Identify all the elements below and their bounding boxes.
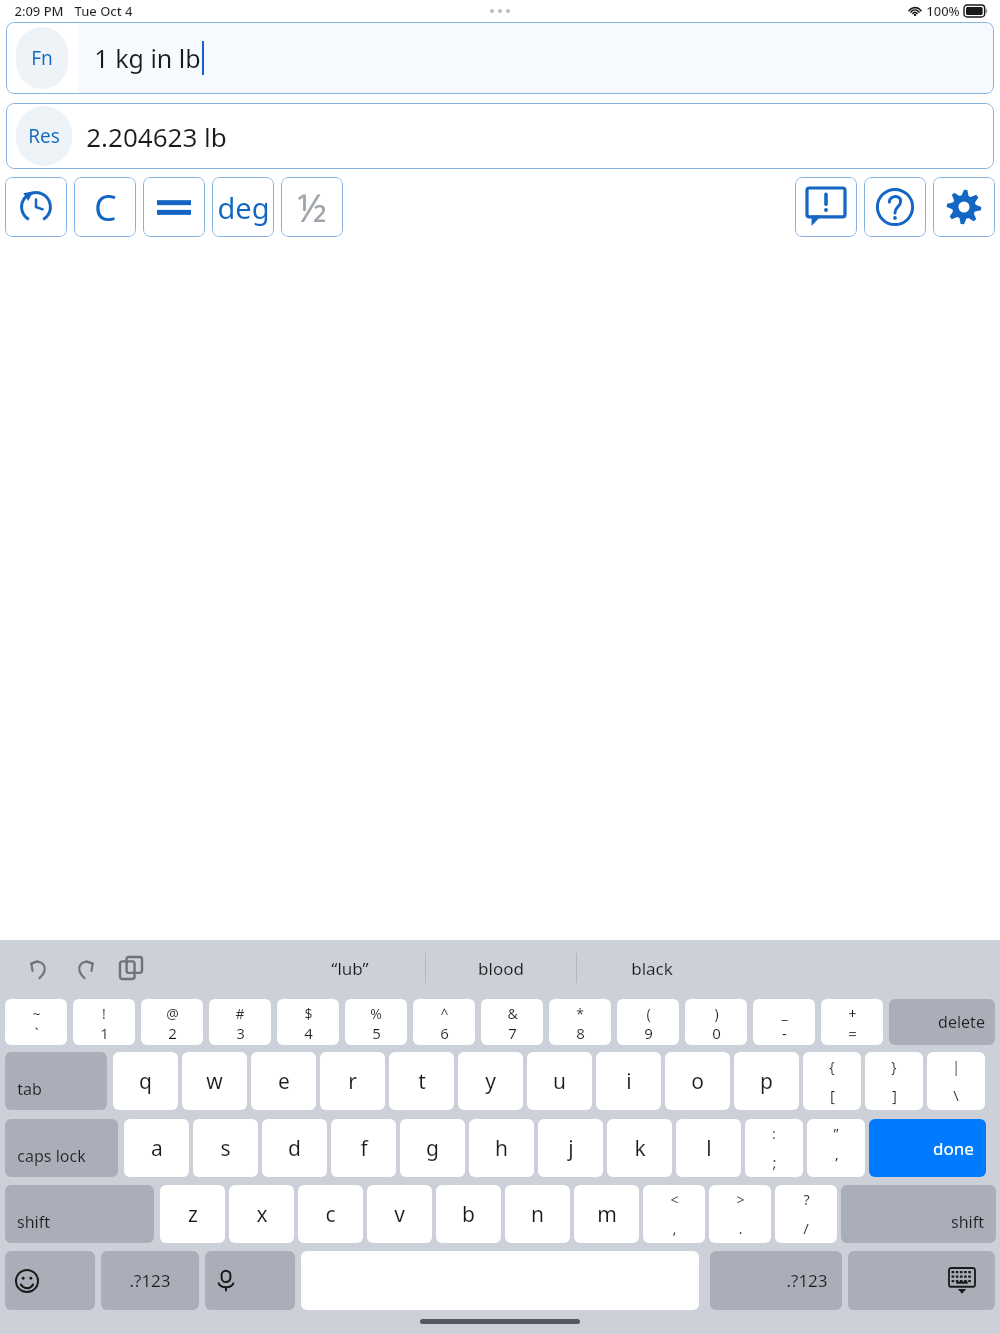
button[interactable]: u: [527, 1052, 592, 1110]
button[interactable]: p: [734, 1052, 799, 1110]
button[interactable]: h: [469, 1119, 534, 1177]
button[interactable]: &: [481, 999, 543, 1045]
button[interactable]: w: [182, 1052, 247, 1110]
button[interactable]: ”: [807, 1119, 865, 1177]
button[interactable]: <: [643, 1185, 705, 1243]
button[interactable]: |: [927, 1052, 985, 1110]
staticText: .: [738, 1218, 743, 1238]
button[interactable]: Undo: [22, 951, 56, 985]
button[interactable]: s: [193, 1119, 258, 1177]
button[interactable]: o: [665, 1052, 730, 1110]
staticText: g: [426, 1134, 439, 1163]
button[interactable]: Res: [6, 103, 994, 169]
button[interactable]: r: [320, 1052, 385, 1110]
button[interactable]: m: [574, 1185, 639, 1243]
button[interactable]: .?123: [101, 1251, 199, 1310]
button[interactable]: ?: [775, 1185, 837, 1243]
button[interactable]: History: [5, 177, 67, 237]
button[interactable]: black: [577, 957, 727, 980]
button[interactable]: :: [745, 1119, 803, 1177]
staticText: /: [803, 1218, 809, 1238]
button[interactable]: d: [262, 1119, 327, 1177]
staticText: shift: [17, 1211, 50, 1233]
button[interactable]: x: [229, 1185, 294, 1243]
button[interactable]: “lub”: [275, 957, 425, 980]
button[interactable]: $: [277, 999, 339, 1045]
button[interactable]: shift: [5, 1185, 154, 1243]
button[interactable]: n: [505, 1185, 570, 1243]
button[interactable]: q: [113, 1052, 178, 1110]
button[interactable]: y: [458, 1052, 523, 1110]
button[interactable]: {: [803, 1052, 861, 1110]
button[interactable]: c: [298, 1185, 363, 1243]
button[interactable]: shift: [841, 1185, 996, 1243]
button[interactable]: blood: [426, 957, 576, 980]
staticText: ,: [672, 1218, 677, 1238]
button[interactable]: l: [676, 1119, 741, 1177]
button[interactable]: (: [617, 999, 679, 1045]
staticText: {: [829, 1057, 835, 1076]
staticText: 8: [576, 1023, 585, 1040]
button[interactable]: a: [124, 1119, 189, 1177]
button[interactable]: #: [209, 999, 271, 1045]
staticText: %: [370, 1004, 382, 1023]
button[interactable]: Emoji: [5, 1251, 95, 1310]
button[interactable]: Paste: [114, 951, 148, 985]
staticText: |: [952, 1057, 960, 1076]
button[interactable]: +: [821, 999, 883, 1045]
button[interactable]: g: [400, 1119, 465, 1177]
staticText: 2.204623 lb: [86, 119, 227, 154]
button[interactable]: Clear: [74, 177, 136, 237]
staticText: &: [507, 1004, 518, 1023]
button[interactable]: Fn: [6, 22, 994, 94]
button[interactable]: k: [607, 1119, 672, 1177]
button[interactable]: !: [73, 999, 135, 1045]
button[interactable]: Dictation: [205, 1251, 295, 1310]
button[interactable]: caps lock: [5, 1119, 118, 1177]
button[interactable]: b: [436, 1185, 501, 1243]
button[interactable]: Equals: [143, 177, 205, 237]
button[interactable]: Hide keyboard: [848, 1251, 995, 1310]
button[interactable]: *: [549, 999, 611, 1045]
button[interactable]: Help: [864, 177, 926, 237]
staticText: w: [206, 1067, 223, 1096]
staticText: ”: [833, 1124, 839, 1143]
staticText: <: [670, 1190, 679, 1209]
button[interactable]: Fraction: [281, 177, 343, 237]
staticText: #: [235, 1004, 245, 1023]
button[interactable]: @: [141, 999, 203, 1045]
button[interactable]: Redo: [68, 951, 102, 985]
button[interactable]: Settings: [933, 177, 995, 237]
button[interactable]: j: [538, 1119, 603, 1177]
button[interactable]: v: [367, 1185, 432, 1243]
staticText: u: [553, 1067, 566, 1096]
staticText: c: [325, 1200, 336, 1229]
button[interactable]: ~: [5, 999, 67, 1045]
button[interactable]: i: [596, 1052, 661, 1110]
button[interactable]: >: [709, 1185, 771, 1243]
button[interactable]: done: [869, 1119, 986, 1177]
button[interactable]: Feedback: [795, 177, 857, 237]
staticText: :: [772, 1124, 776, 1143]
staticText: 3: [236, 1023, 245, 1040]
staticText: 5: [372, 1023, 381, 1040]
button[interactable]: f: [331, 1119, 396, 1177]
button[interactable]: z: [160, 1185, 225, 1243]
staticText: ?: [803, 1190, 810, 1209]
staticText: *: [576, 1004, 584, 1023]
staticText: $: [304, 1004, 313, 1023]
staticText: ^: [440, 1004, 449, 1023]
button[interactable]: Degrees: [212, 177, 274, 237]
button[interactable]: %: [345, 999, 407, 1045]
staticText: .?123: [786, 1269, 828, 1292]
button[interactable]: .?123: [710, 1251, 842, 1310]
button[interactable]: delete: [889, 999, 995, 1045]
button[interactable]: ^: [413, 999, 475, 1045]
button[interactable]: _: [753, 999, 815, 1045]
button[interactable]: ): [685, 999, 747, 1045]
button[interactable]: }: [865, 1052, 923, 1110]
button[interactable]: tab: [5, 1052, 107, 1110]
button[interactable]: t: [389, 1052, 454, 1110]
button[interactable]: e: [251, 1052, 316, 1110]
